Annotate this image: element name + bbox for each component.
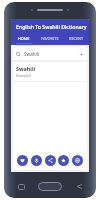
button[interactable]: Back	[76, 183, 83, 190]
button[interactable]: Swahili	[13, 62, 87, 81]
button[interactable]: Add	[78, 51, 84, 57]
button[interactable]: Swahili	[13, 47, 87, 60]
staticText: HOME	[18, 36, 30, 41]
staticText: Swahili	[24, 51, 40, 57]
button[interactable]: RECENT	[63, 34, 89, 45]
staticText: RECENT	[69, 36, 84, 41]
button[interactable]: Favorite	[17, 155, 28, 166]
button[interactable]: FAVORITE	[37, 34, 63, 45]
staticText: Kiswahili	[16, 73, 31, 78]
button[interactable]: Share	[45, 155, 56, 166]
button[interactable]: Bookmark	[58, 155, 69, 166]
button[interactable]: Home	[38, 182, 62, 191]
staticText: English To Swahili Dictionary	[16, 23, 87, 30]
button[interactable]: Pronounce	[31, 155, 42, 166]
button[interactable]: HOME	[11, 34, 37, 45]
staticText: Swahili	[16, 65, 36, 72]
button[interactable]: Translate	[72, 155, 83, 166]
button[interactable]: Recents	[18, 184, 25, 190]
staticText: FAVORITE	[41, 36, 59, 41]
